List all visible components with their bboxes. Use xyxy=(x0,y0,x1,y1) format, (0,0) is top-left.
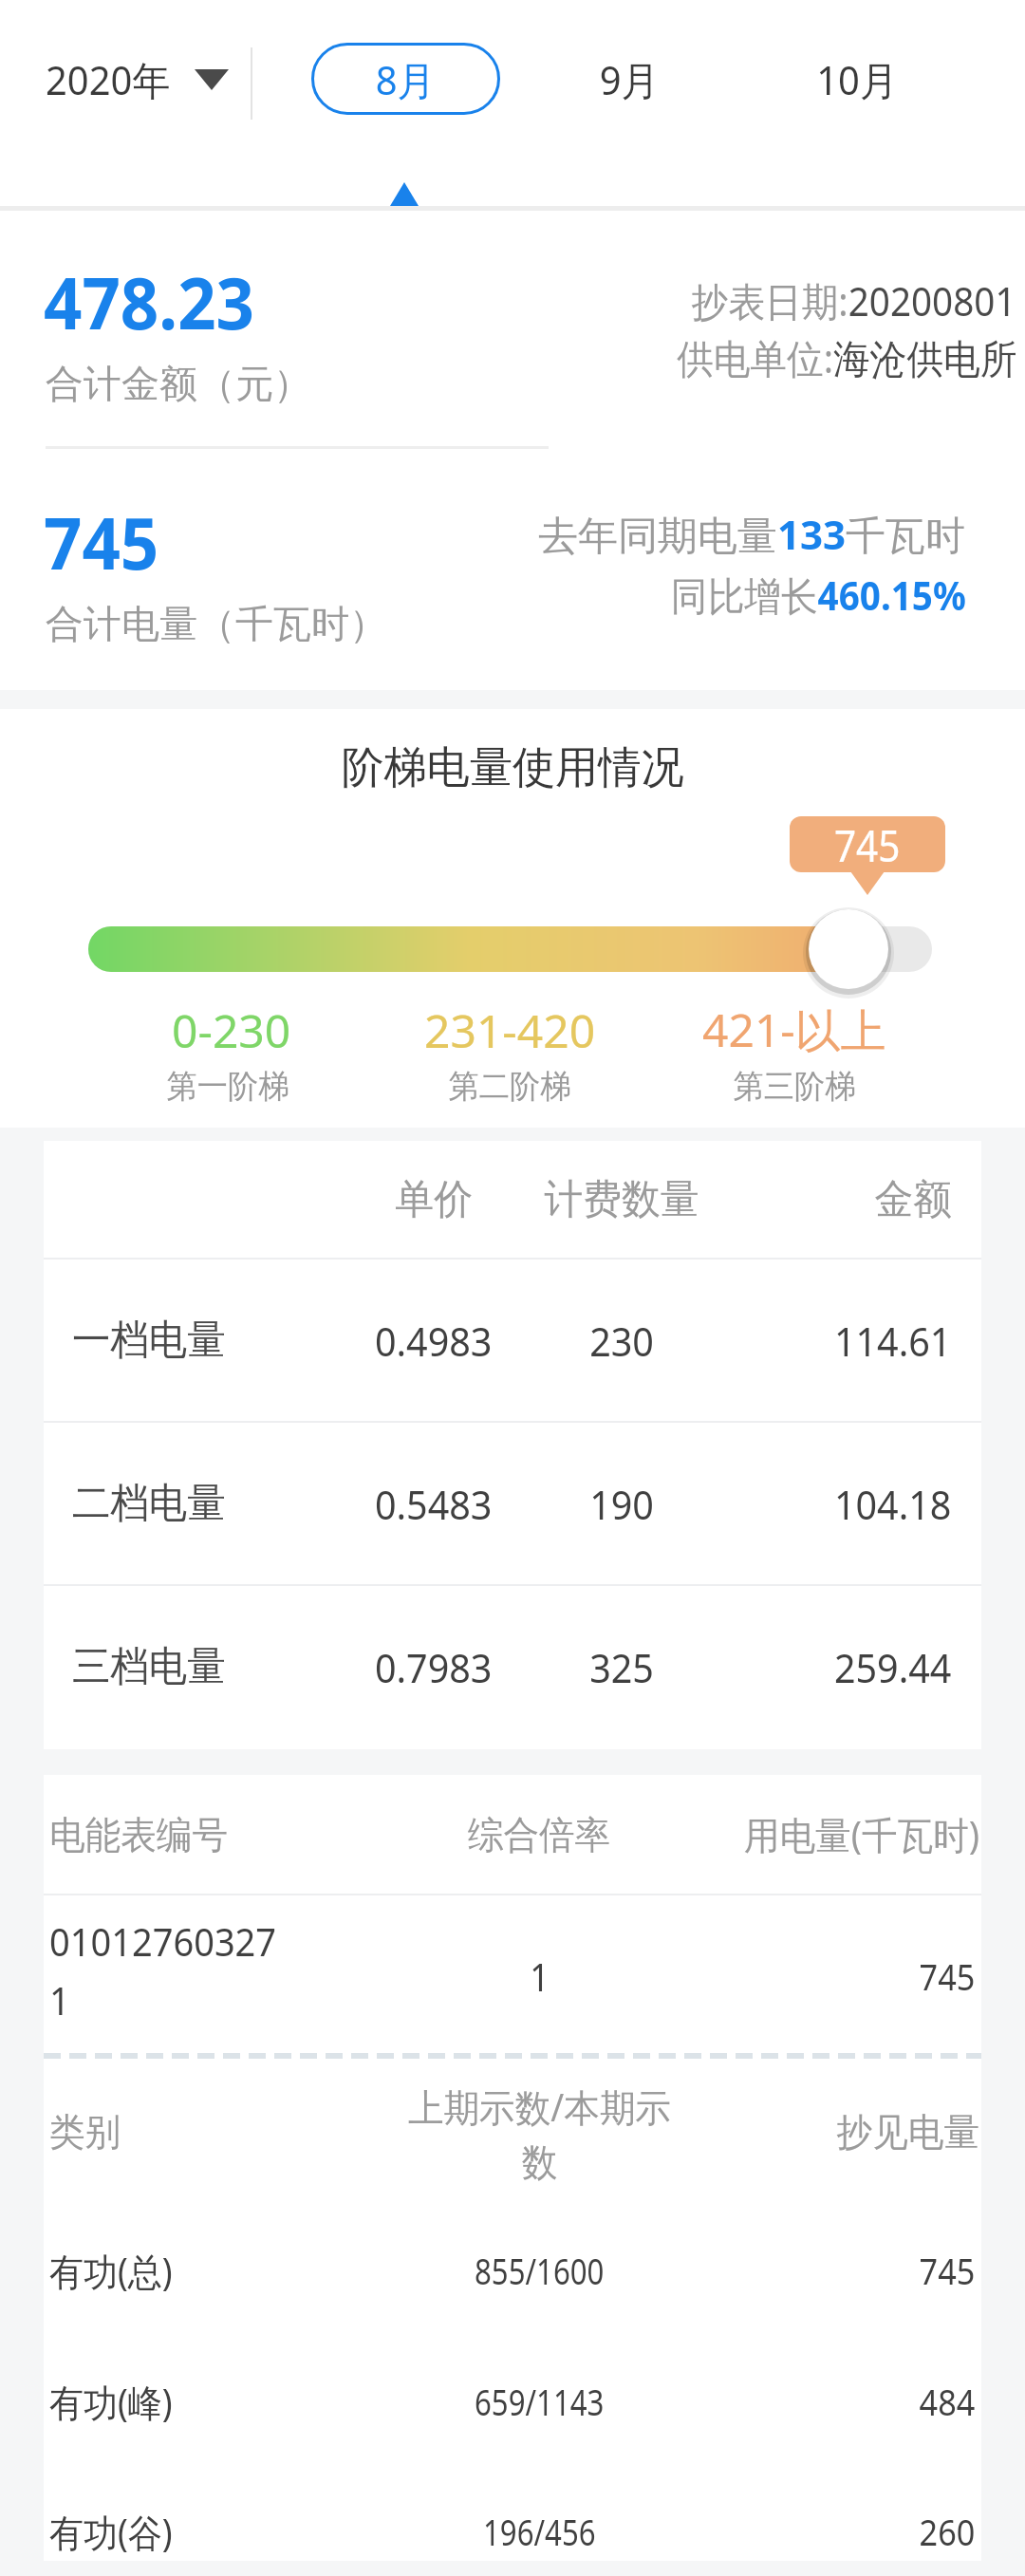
staticText: 745 xyxy=(44,493,159,582)
staticText: 0.7983 xyxy=(375,1640,493,1694)
staticText: 0.4983 xyxy=(375,1314,493,1368)
button[interactable]: 2020年 xyxy=(46,43,229,115)
staticText: 259.44 xyxy=(834,1640,952,1694)
staticText: 421-以上 xyxy=(702,999,886,1061)
staticText: 10月 xyxy=(816,52,898,106)
staticText: 231-420 xyxy=(424,999,596,1061)
staticText: 745 xyxy=(919,1951,976,2001)
staticText: 去年同期电量133千瓦时 xyxy=(538,507,966,561)
staticText: 有功(总) xyxy=(49,2245,172,2297)
staticText: 325 xyxy=(590,1640,655,1694)
staticText: 抄表日期:20200801 xyxy=(692,273,1016,327)
staticText: 659/1143 xyxy=(475,2377,604,2426)
staticText: 0.5483 xyxy=(375,1477,493,1531)
staticText: 用电量(千瓦时) xyxy=(744,1808,979,1860)
staticText: 阶梯电量使用情况 xyxy=(341,740,684,795)
staticText: 供电单位:海沧供电所 xyxy=(677,330,1017,384)
staticText: 第一阶梯 xyxy=(166,1066,289,1107)
staticText: 金额 xyxy=(874,1174,952,1225)
staticText: 上期示数/本期示 数 xyxy=(408,2081,671,2187)
staticText: 三档电量 xyxy=(72,1641,226,1692)
staticText: 同比增长460.15% xyxy=(671,568,966,622)
staticText: 190 xyxy=(590,1477,655,1531)
staticText: 9月 xyxy=(600,52,660,106)
staticText: 855/1600 xyxy=(475,2246,604,2295)
staticText: 745 xyxy=(919,2246,976,2295)
staticText: 第二阶梯 xyxy=(448,1066,571,1107)
staticText: 196/456 xyxy=(483,2507,596,2556)
staticText: 01012760327 1 xyxy=(49,1915,277,2026)
staticText: 综合倍率 xyxy=(468,1811,610,1858)
staticText: 计费数量 xyxy=(544,1174,699,1225)
staticText: 有功(谷) xyxy=(49,2506,172,2558)
staticText: 类别 xyxy=(49,2108,121,2156)
button[interactable]: 9月 xyxy=(553,43,705,115)
staticText: 484 xyxy=(919,2377,976,2426)
staticText: 抄见电量 xyxy=(837,2108,979,2156)
staticText: 478.23 xyxy=(44,252,255,342)
staticText: 二档电量 xyxy=(72,1478,226,1529)
staticText: 8月 xyxy=(376,52,436,106)
button[interactable]: 10月 xyxy=(781,43,933,115)
staticText: 合计金额（元） xyxy=(46,360,311,407)
staticText: 104.18 xyxy=(834,1477,952,1531)
staticText: 一档电量 xyxy=(72,1315,226,1366)
staticText: 230 xyxy=(590,1314,655,1368)
staticText: 电能表编号 xyxy=(49,1811,228,1858)
staticText: 合计电量（千瓦时） xyxy=(46,600,387,647)
staticText: 2020年 xyxy=(46,52,171,106)
staticText: 745 xyxy=(834,816,901,872)
staticText: 单价 xyxy=(395,1174,472,1225)
staticText: 1 xyxy=(530,1951,549,2002)
staticText: 有功(峰) xyxy=(49,2376,172,2428)
staticText: 260 xyxy=(919,2507,976,2556)
button[interactable]: 8月 xyxy=(311,43,500,115)
staticText: 0-230 xyxy=(172,999,291,1061)
staticText: 第三阶梯 xyxy=(733,1066,856,1107)
staticText: 114.61 xyxy=(834,1314,952,1368)
